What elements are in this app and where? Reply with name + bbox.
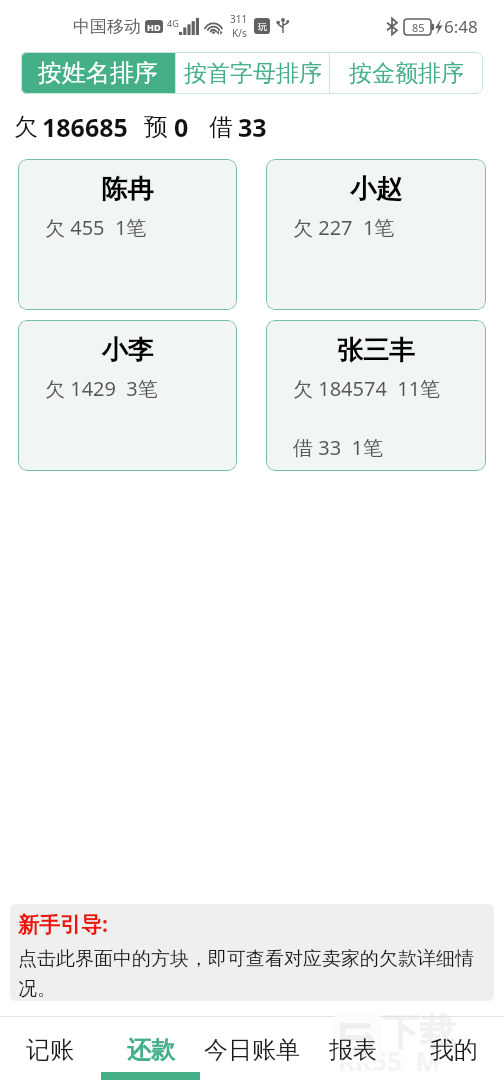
staticText: 记账 bbox=[26, 1035, 74, 1065]
button[interactable]: 张三丰 bbox=[266, 320, 486, 471]
staticText: 186685 bbox=[42, 110, 128, 144]
staticText: 4G bbox=[167, 17, 179, 29]
staticText: 6:48 bbox=[444, 15, 478, 38]
staticText: 点击此界面中的方块，即可查看对应卖家的欠款详细情况。 bbox=[18, 947, 488, 1000]
staticText: 311 bbox=[230, 12, 248, 26]
staticText: 报表 bbox=[329, 1035, 377, 1065]
staticText: 33 bbox=[238, 110, 267, 144]
staticText: 按首字母排序 bbox=[184, 59, 322, 88]
staticText: 按姓名排序 bbox=[38, 58, 158, 88]
staticText: 0 bbox=[174, 110, 189, 144]
staticText: 中国移动 bbox=[73, 16, 141, 37]
staticText: 欠 bbox=[14, 112, 38, 142]
button[interactable]: 还款 bbox=[100, 1017, 201, 1080]
staticText: 欠 184574 11笔 bbox=[293, 375, 441, 402]
button[interactable]: 今日账单 bbox=[201, 1017, 302, 1080]
staticText: 欠 227 1笔 bbox=[293, 214, 395, 241]
staticText: 张三丰 bbox=[266, 334, 486, 367]
button[interactable]: 小李 bbox=[18, 320, 237, 471]
staticText: 玩 bbox=[258, 21, 267, 32]
staticText: 欠 455 1笔 bbox=[45, 214, 147, 241]
staticText: 我的 bbox=[430, 1035, 478, 1065]
staticText: 小李 bbox=[18, 334, 237, 367]
staticText: 借 bbox=[209, 112, 233, 142]
staticText: 85 bbox=[412, 20, 425, 35]
button[interactable]: 按姓名排序 bbox=[21, 52, 175, 94]
button[interactable]: 报表 bbox=[302, 1017, 403, 1080]
button[interactable]: 按金额排序 bbox=[330, 52, 483, 94]
staticText: 新手引导: bbox=[18, 910, 108, 939]
button[interactable]: 记账 bbox=[0, 1017, 100, 1080]
staticText: 今日账单 bbox=[204, 1035, 300, 1065]
other: USB bbox=[277, 18, 289, 34]
button[interactable]: 小赵 bbox=[266, 159, 486, 310]
staticText: 借 33 1笔 bbox=[293, 434, 383, 461]
button[interactable]: 陈冉 bbox=[18, 159, 237, 310]
staticText: 欠 1429 3笔 bbox=[45, 375, 158, 402]
staticText: K/s bbox=[232, 26, 247, 40]
staticText: 小赵 bbox=[266, 173, 486, 206]
staticText: 陈冉 bbox=[18, 173, 237, 206]
staticText: 按金额排序 bbox=[349, 59, 464, 88]
staticText: RR55 M bbox=[338, 1043, 440, 1078]
button[interactable]: 按首字母排序 bbox=[176, 52, 329, 94]
staticText: 预 bbox=[144, 112, 168, 142]
staticText: 还款 bbox=[127, 1035, 175, 1065]
staticText: HD bbox=[147, 21, 161, 33]
staticText: 55下载 bbox=[340, 1005, 457, 1056]
button[interactable]: 我的 bbox=[403, 1017, 504, 1080]
